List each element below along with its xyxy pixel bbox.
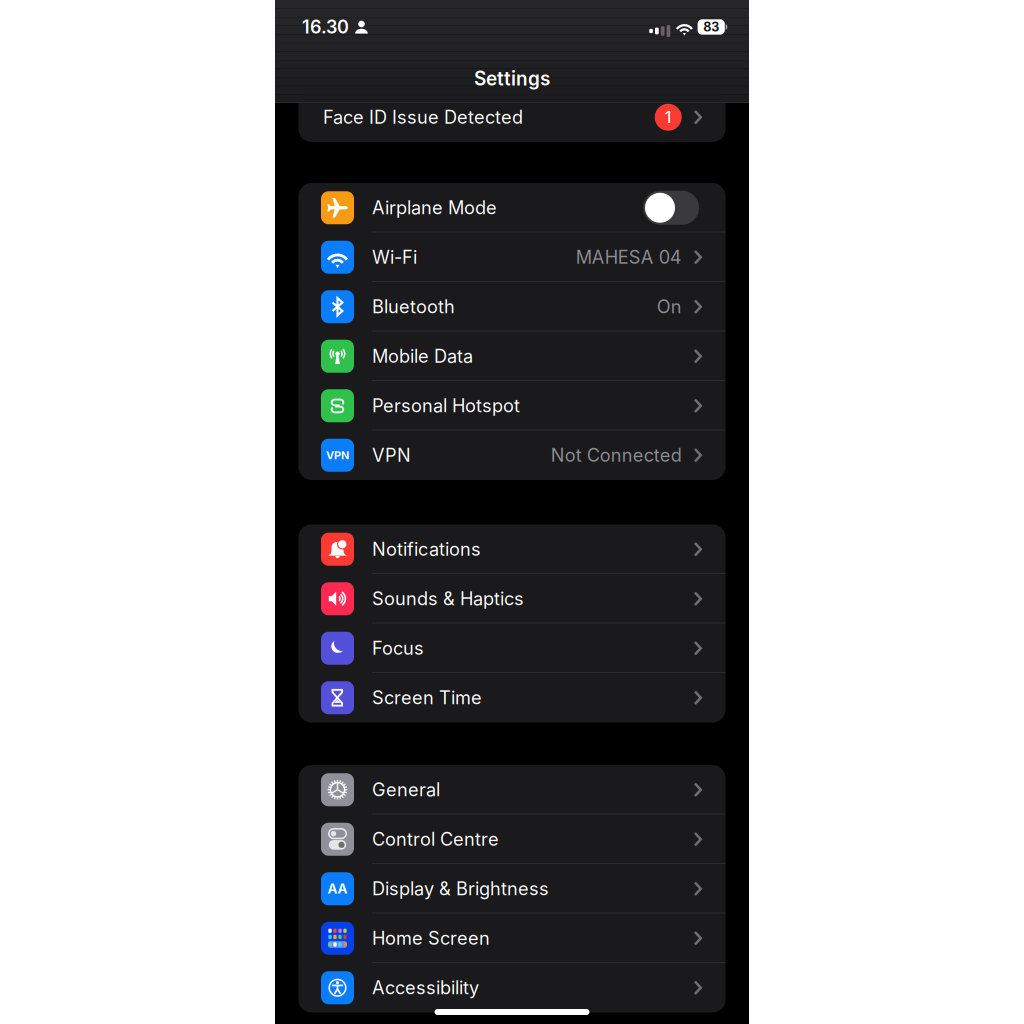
staticText: 16.30 xyxy=(302,16,349,38)
staticText: VPN xyxy=(326,449,349,462)
staticText: 83 xyxy=(703,19,719,35)
button[interactable]: Focus xyxy=(298,623,725,673)
staticText: Personal Hotspot xyxy=(372,395,520,417)
button[interactable]: Home Screen xyxy=(298,913,725,963)
button[interactable]: Accessibility xyxy=(298,963,725,1012)
staticText: Display & Brightness xyxy=(372,878,549,900)
staticText: VPN xyxy=(372,444,411,466)
staticText: AA xyxy=(327,881,347,897)
staticText: Control Centre xyxy=(372,828,499,850)
staticText: Settings xyxy=(474,67,550,90)
staticText: Not Connected xyxy=(551,444,682,466)
staticText: 1 xyxy=(665,108,672,127)
button[interactable]: Screen Time xyxy=(298,673,725,722)
staticText: Wi-Fi xyxy=(372,246,417,268)
button[interactable]: Airplane Mode xyxy=(643,191,702,225)
button[interactable]: General xyxy=(298,765,725,814)
staticText: Bluetooth xyxy=(372,296,455,318)
staticText: Screen Time xyxy=(372,687,482,709)
staticText: Accessibility xyxy=(372,977,479,999)
button[interactable]: Sounds & Haptics xyxy=(298,574,725,623)
button[interactable]: VPN xyxy=(298,430,725,480)
staticText: Notifications xyxy=(372,538,481,560)
staticText: Mobile Data xyxy=(372,345,473,367)
button[interactable]: Control Centre xyxy=(298,814,725,864)
button[interactable]: Mobile Data xyxy=(298,331,725,381)
staticText: MAHESA 04 xyxy=(576,246,682,268)
button[interactable]: Bluetooth xyxy=(298,282,725,331)
staticText: On xyxy=(657,296,682,318)
button[interactable]: Personal Hotspot xyxy=(298,381,725,430)
staticText: Home Screen xyxy=(372,927,490,949)
staticText: Focus xyxy=(372,637,424,659)
button[interactable]: Wi-Fi xyxy=(298,232,725,282)
button[interactable]: Notifications xyxy=(298,524,725,574)
button[interactable]: Face ID Issue Detected xyxy=(298,92,725,142)
staticText: General xyxy=(372,779,440,801)
button[interactable]: AA xyxy=(298,864,725,913)
staticText: Face ID Issue Detected xyxy=(323,106,523,128)
staticText: Airplane Mode xyxy=(372,197,497,219)
staticText: Sounds & Haptics xyxy=(372,588,524,610)
